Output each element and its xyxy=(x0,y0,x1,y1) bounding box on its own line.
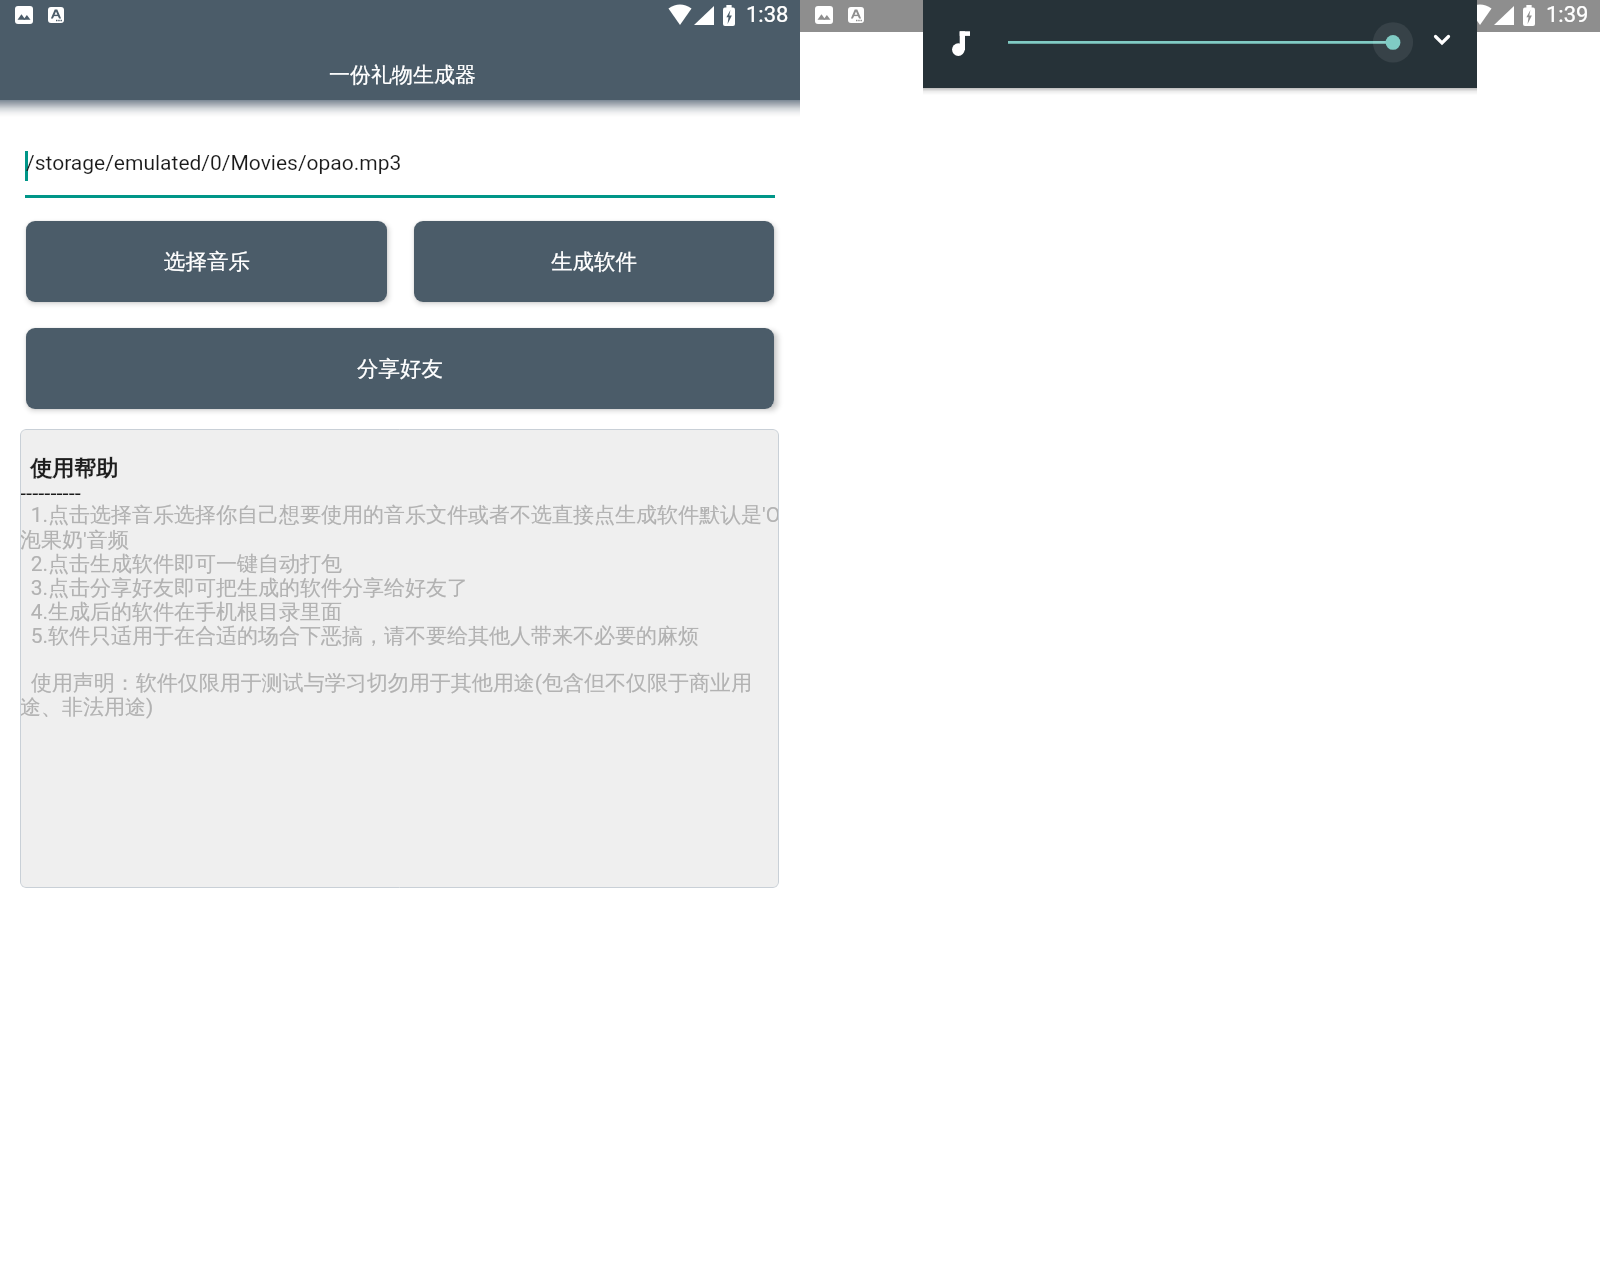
staticText: /storage/emulated/0/Movies/opao.mp3 xyxy=(26,151,402,176)
staticText: 1:38 xyxy=(746,2,789,28)
staticText: 使用帮助 xyxy=(30,455,118,483)
staticText: 生成软件 xyxy=(551,248,637,275)
staticText: 1.点击选择音乐选择你自己想要使用的音乐文件或者不选直接点生成软件默认是'O泡果… xyxy=(20,502,779,720)
staticText: 选择音乐 xyxy=(164,248,250,275)
button[interactable]: 分享好友 xyxy=(26,328,774,409)
staticText: 1:39 xyxy=(1546,2,1589,28)
button[interactable]: 生成软件 xyxy=(414,221,774,302)
staticText: 分享好友 xyxy=(357,355,443,382)
button[interactable]: 选择音乐 xyxy=(26,221,387,302)
staticText: 一份礼物生成器 xyxy=(329,62,476,88)
other: Music volume xyxy=(941,25,975,59)
button[interactable]: /storage/emulated/0/Movies/opao.mp3 xyxy=(25,140,775,198)
staticText: ---------- xyxy=(20,481,81,507)
button[interactable]: Collapse xyxy=(1422,22,1462,62)
